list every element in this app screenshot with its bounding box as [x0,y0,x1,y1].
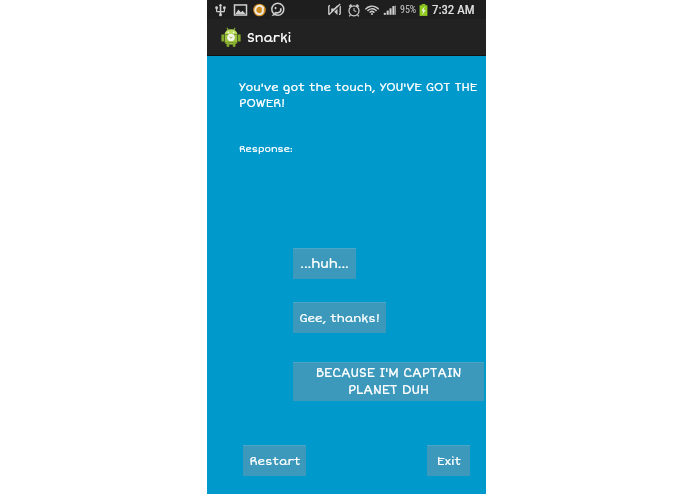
staticText: Gee, thanks! [299,311,380,325]
staticText: You've got the touch, YOU'VE GOT THE POW… [239,80,485,111]
button[interactable]: Restart [243,445,306,476]
staticText: Restart [249,454,301,468]
button[interactable]: BECAUSE I'M CAPTAIN PLANET DUH [293,362,484,401]
button[interactable]: Exit [427,445,470,476]
other: Gallery [233,3,248,17]
button[interactable]: ...huh... [293,248,356,279]
other: Mobile signal [383,4,396,16]
staticText: 95% [400,4,417,16]
other: USB connected [213,3,228,17]
staticText: ...huh... [300,256,349,272]
staticText: BECAUSE I'M CAPTAIN PLANET DUH [293,365,484,398]
other: Alarm set [347,3,361,17]
staticText: Snarki [247,30,292,45]
other: Message [270,3,285,17]
button[interactable]: Gee, thanks! [293,302,386,333]
other: Sync [252,3,267,17]
other: Battery charging [417,3,430,17]
staticText: 7:32 AM [432,2,475,17]
other: Wi-Fi [365,4,379,16]
staticText: Response: [239,143,293,155]
other: Silent mode [327,4,342,16]
button[interactable]: Snarki [207,19,306,56]
staticText: Exit [437,454,461,468]
